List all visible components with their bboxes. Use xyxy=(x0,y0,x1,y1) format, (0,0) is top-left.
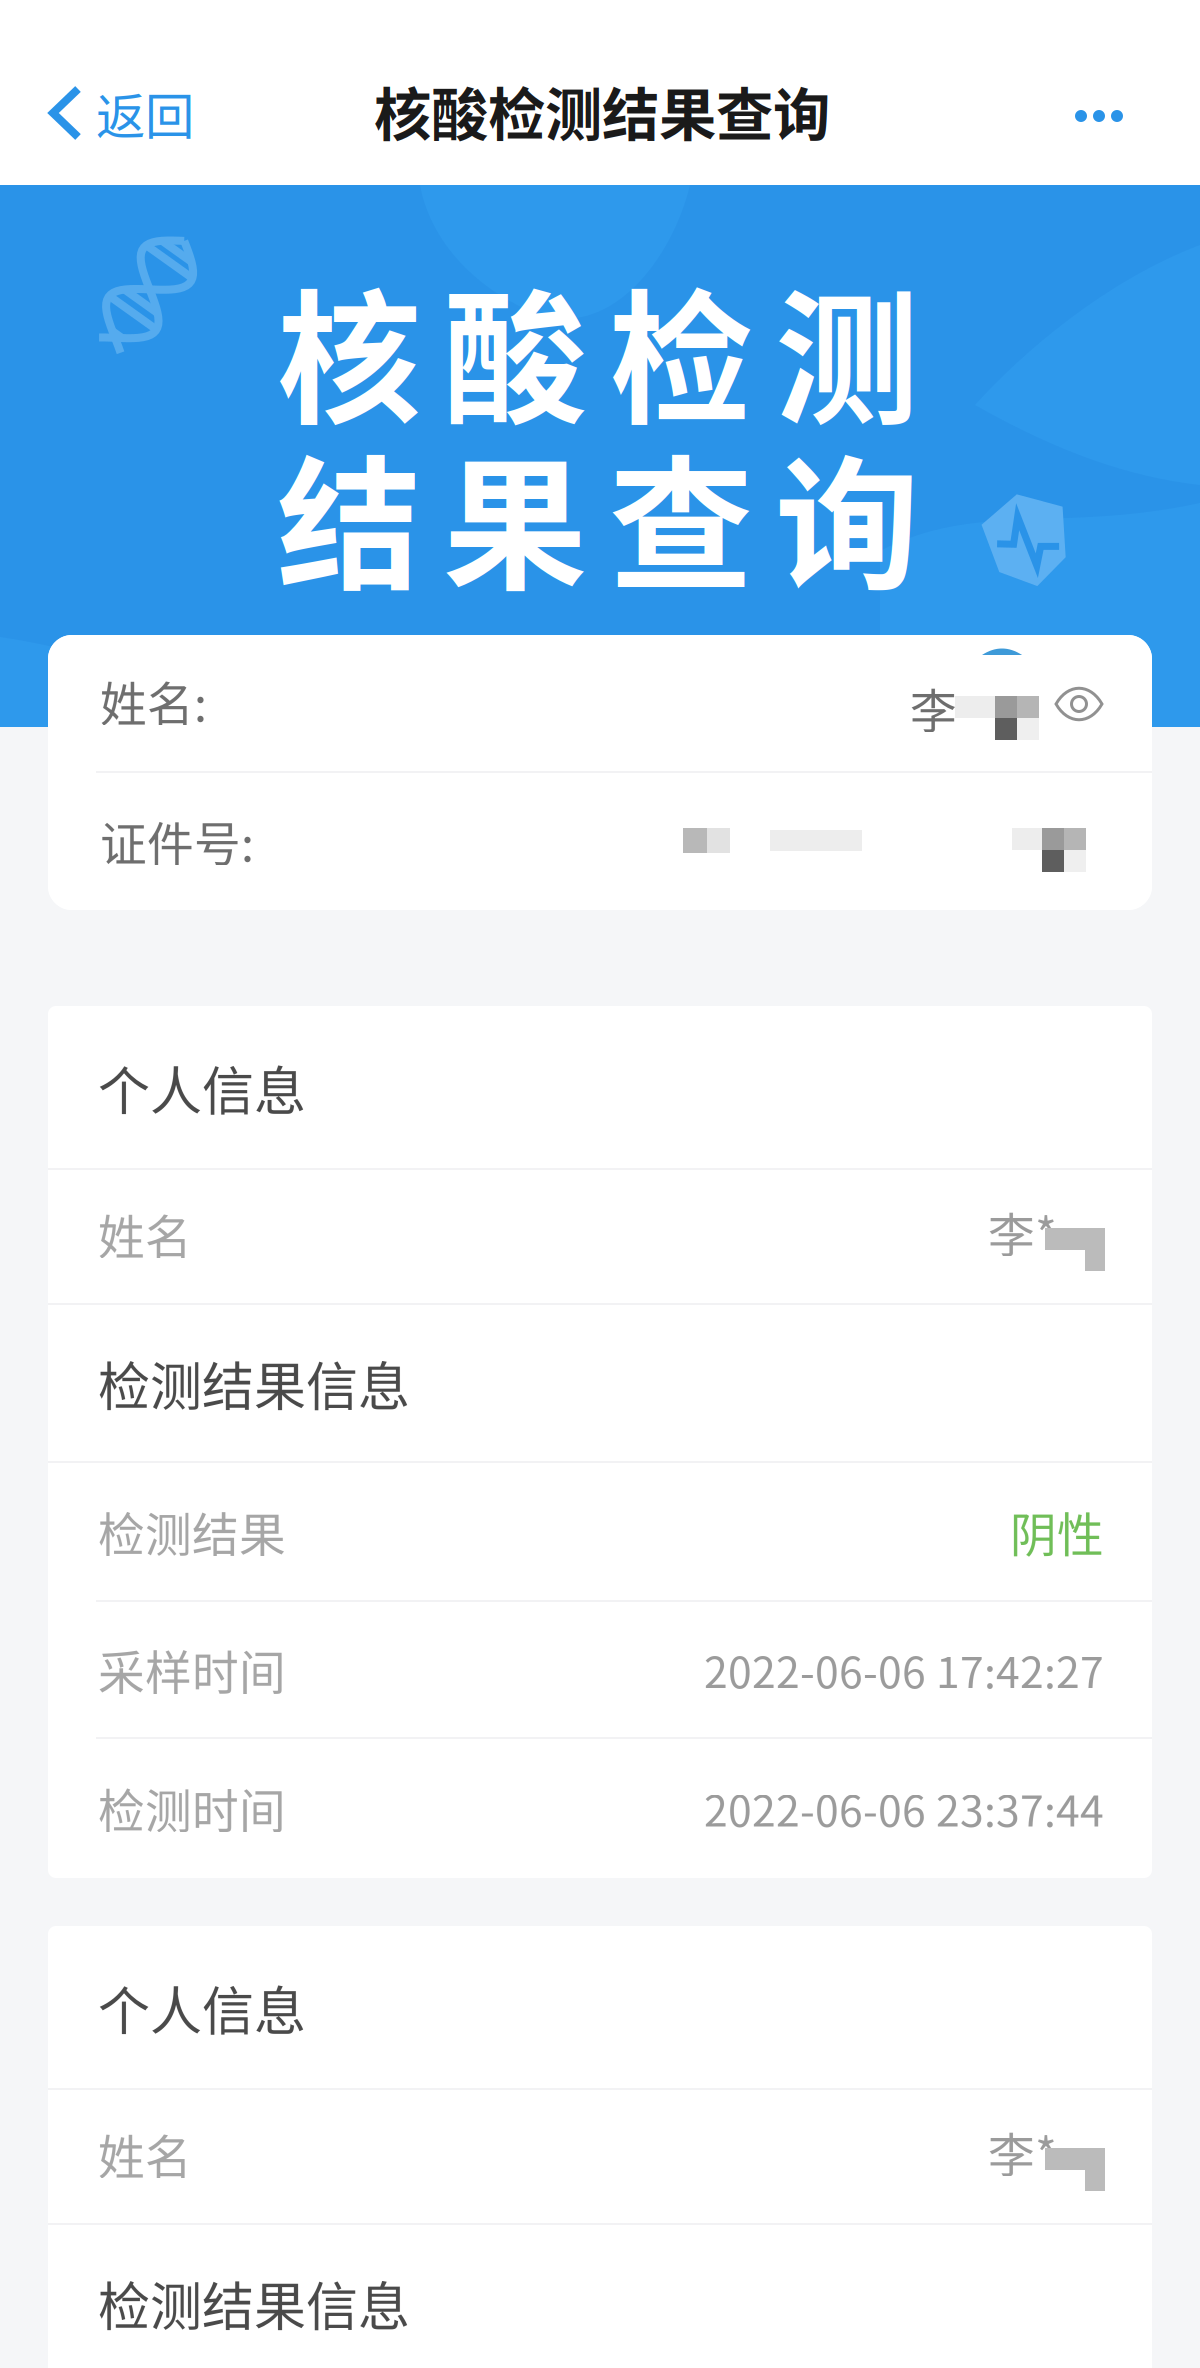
staticText: 检测时间 xyxy=(98,1774,286,1842)
button[interactable]: 显示姓名 xyxy=(1046,671,1112,737)
staticText: 阴性 xyxy=(1010,1498,1104,1565)
staticText: 李* xyxy=(988,1198,1057,1266)
staticText: 李* xyxy=(988,2118,1057,2186)
staticText: 证件号: xyxy=(100,807,254,875)
staticText: 检测结果 xyxy=(98,1498,286,1565)
staticText: 姓名: xyxy=(100,667,207,735)
staticText: 检测结果信息 xyxy=(98,1345,410,1421)
staticText: 核酸检测 xyxy=(277,245,919,453)
staticText: 核酸检测结果查询 xyxy=(374,69,830,152)
staticText: 个人信息 xyxy=(98,1970,306,2045)
staticText: 2022-06-06 23:37:44 xyxy=(704,1777,1104,1839)
staticText: 姓名 xyxy=(98,1200,192,1268)
button[interactable]: 更多 xyxy=(1034,56,1164,176)
staticText: 返回 xyxy=(96,77,194,149)
staticText: 李 xyxy=(910,674,957,742)
staticText: 姓名 xyxy=(98,2120,192,2188)
staticText: 个人信息 xyxy=(98,1050,306,1125)
staticText: 采样时间 xyxy=(98,1636,286,1703)
button[interactable]: 返回 xyxy=(0,48,220,178)
staticText: 结果查询 xyxy=(277,411,919,619)
staticText: 检测结果信息 xyxy=(98,2265,410,2341)
staticText: 2022-06-06 17:42:27 xyxy=(704,1639,1104,1700)
